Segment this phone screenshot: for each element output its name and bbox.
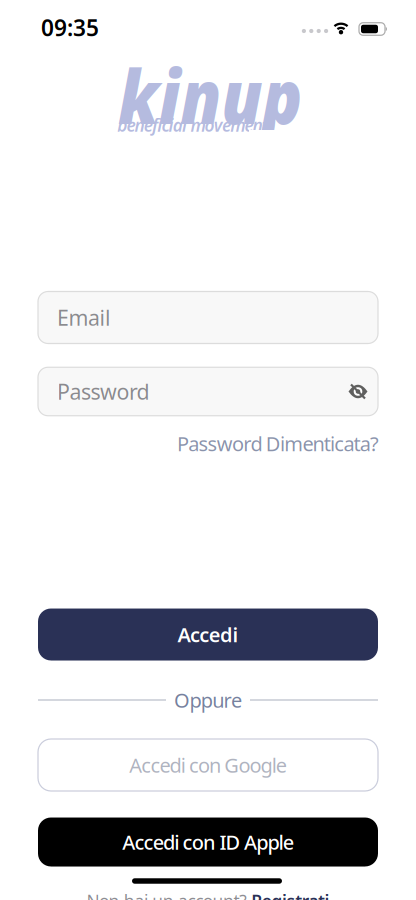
- staticText: Accedi con ID Apple: [122, 829, 294, 855]
- button[interactable]: Accedi con Google: [38, 739, 378, 791]
- staticText: Non hai un account?: [86, 889, 247, 900]
- staticText: Password: [57, 377, 149, 406]
- button[interactable]: Accedi: [38, 608, 378, 660]
- button[interactable]: Password Dimenticata?: [37, 430, 379, 457]
- staticText: kinup: [106, 45, 313, 145]
- staticText: Password Dimenticata?: [177, 430, 379, 457]
- staticText: 09:35: [41, 12, 99, 42]
- button[interactable]: Password: [38, 367, 378, 416]
- button[interactable]: Non hai un account?: [86, 889, 330, 900]
- staticText: Oppure: [174, 687, 242, 713]
- staticText: Accedi: [177, 621, 238, 648]
- staticText: Email: [57, 303, 111, 332]
- staticText: beneficial movement: [117, 113, 269, 136]
- staticText: Accedi con Google: [129, 752, 287, 778]
- button[interactable]: Accedi con ID Apple: [38, 817, 378, 866]
- button[interactable]: Email: [38, 291, 378, 343]
- staticText: Registrati: [251, 889, 330, 900]
